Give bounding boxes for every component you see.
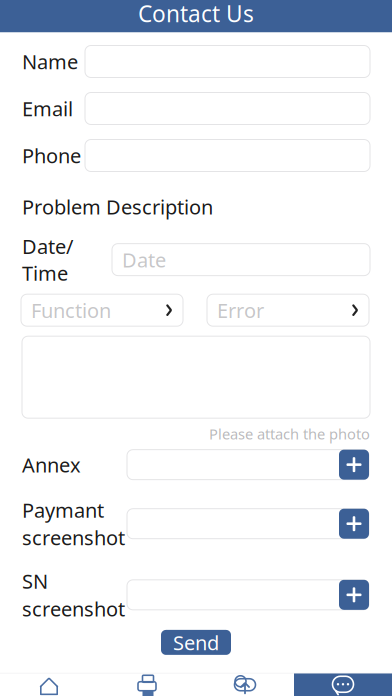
button[interactable]: Contact us (294, 673, 392, 696)
button[interactable]: Attach photo (339, 580, 369, 610)
button[interactable]: Send (161, 630, 231, 655)
staticText: Paymant (22, 497, 104, 523)
button[interactable]: Date (112, 244, 370, 276)
staticText: screenshot (22, 595, 125, 622)
staticText: screenshot (22, 524, 125, 551)
button[interactable]: Instant Print (98, 673, 196, 696)
staticText: Please attach the photo (209, 424, 370, 444)
staticText: Problem Description (22, 193, 213, 220)
staticText: Send (173, 629, 219, 656)
staticText: SN (22, 568, 48, 594)
button[interactable]: Function (21, 294, 183, 326)
staticText: Contact Us (138, 0, 254, 29)
button[interactable]: Attach photo (339, 450, 369, 480)
staticText: Function (31, 297, 111, 323)
staticText: Name (22, 48, 78, 75)
staticText: Annex (22, 451, 81, 478)
button[interactable]: Home (0, 673, 98, 696)
staticText: Phone (22, 142, 81, 169)
button[interactable]: Print Later (196, 673, 294, 696)
staticText: Date/Time (22, 233, 73, 286)
button[interactable]: Error (207, 294, 369, 326)
staticText: Date (122, 246, 166, 273)
staticText: Error (217, 297, 264, 323)
button[interactable]: Attach photo (339, 509, 369, 539)
staticText: Email (22, 95, 73, 122)
